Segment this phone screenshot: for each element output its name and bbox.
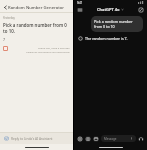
button[interactable]: Camera <box>85 136 91 142</box>
button[interactable]: Message <box>101 135 136 142</box>
staticText: 9:41 <box>77 1 83 5</box>
staticText: The random number is 7. <box>85 36 128 41</box>
staticText: Pick a random number from 0 to 10 <box>94 19 140 29</box>
staticText: 7 <box>3 37 6 42</box>
staticText: Please let me know if you need more. <box>26 50 70 53</box>
staticText: Pick a random number from 0 to 10. <box>3 22 70 34</box>
button[interactable]: App icon <box>3 46 8 51</box>
staticText: Thank you, have a nice day. <box>37 46 70 49</box>
button[interactable]: Voice mode <box>138 136 144 142</box>
button[interactable]: Back <box>2 4 9 11</box>
button[interactable]: Attach <box>77 136 83 142</box>
staticText: Random Number Generator <box>8 5 65 11</box>
staticText: Message <box>104 137 117 141</box>
other: ChatGPT <box>78 36 83 41</box>
button[interactable]: Pick a random number from 0 to 10 <box>91 16 143 32</box>
button[interactable]: ChatGPT 4o <box>97 7 124 12</box>
staticText: ChatGPT 4o <box>97 7 120 12</box>
staticText: Reply to Linda's AI Assistant <box>11 137 53 141</box>
button[interactable]: Reply to Linda's AI Assistant <box>0 133 73 144</box>
button[interactable]: New chat <box>138 7 144 13</box>
button[interactable]: Menu <box>77 7 83 13</box>
button[interactable]: Photos <box>93 136 99 142</box>
staticText: Yesterday <box>3 16 15 20</box>
